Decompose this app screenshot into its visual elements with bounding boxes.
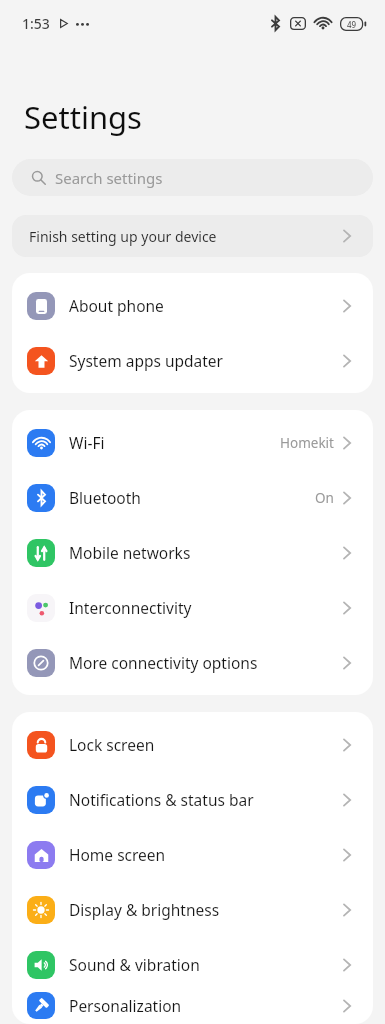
button[interactable]: Finish setting up your device [12, 215, 373, 257]
staticText: Bluetooth [69, 487, 315, 508]
button[interactable]: Home screen [12, 827, 373, 882]
button[interactable]: System apps updater [12, 333, 373, 388]
button[interactable]: Sound & vibration [12, 937, 373, 992]
staticText: On [315, 489, 334, 507]
staticText: Home screen [69, 844, 343, 865]
button[interactable]: Display & brightness [12, 882, 373, 937]
button[interactable]: Notifications & status bar [12, 772, 373, 827]
staticText: 1:53 [22, 14, 50, 33]
button[interactable]: Interconnectivity [12, 580, 373, 635]
staticText: Personalization [69, 995, 343, 1016]
staticText: Finish setting up your device [29, 227, 343, 246]
staticText: Search settings [55, 168, 163, 188]
button[interactable]: Lock screen [12, 717, 373, 772]
button[interactable]: Bluetooth [12, 470, 373, 525]
button[interactable]: Mobile networks [12, 525, 373, 580]
staticText: Interconnectivity [69, 597, 343, 618]
staticText: Mobile networks [69, 542, 343, 563]
button[interactable]: Personalization [12, 992, 373, 1019]
button[interactable]: More connectivity options [12, 635, 373, 690]
staticText: Wi-Fi [69, 432, 280, 453]
staticText: System apps updater [69, 350, 343, 371]
staticText: Sound & vibration [69, 954, 343, 975]
button[interactable]: Search settings [12, 159, 373, 196]
staticText: About phone [69, 295, 343, 316]
staticText: Display & brightness [69, 899, 343, 920]
staticText: Lock screen [69, 734, 343, 755]
staticText: Notifications & status bar [69, 789, 343, 810]
staticText: 49 [347, 19, 357, 30]
staticText: Settings [24, 96, 142, 138]
button[interactable]: Wi-Fi [12, 415, 373, 470]
staticText: Homekit [280, 434, 334, 452]
staticText: More connectivity options [69, 652, 343, 673]
button[interactable]: About phone [12, 278, 373, 333]
